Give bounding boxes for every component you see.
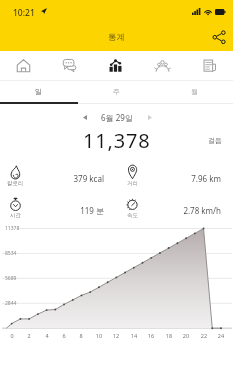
button[interactable]: Home — [0, 51, 46, 80]
button[interactable]: Share — [208, 26, 230, 48]
button[interactable]: Activity — [139, 51, 186, 80]
staticText: 24 — [215, 332, 227, 339]
staticText: 6 — [58, 332, 70, 339]
staticText: 16 — [145, 332, 157, 339]
button[interactable]: 주 — [77, 81, 155, 102]
staticText: 시간 — [10, 212, 21, 219]
staticText: 0 — [6, 332, 18, 339]
button[interactable]: 칼로리 — [0, 163, 117, 195]
staticText: 18 — [163, 332, 175, 339]
staticText: 7.96 km — [141, 173, 221, 184]
staticText: 2.78 km/h — [141, 205, 221, 216]
staticText: 일 — [35, 87, 42, 96]
button[interactable]: 월 — [155, 81, 233, 102]
button[interactable]: 일 — [0, 81, 77, 102]
staticText: 2 — [23, 332, 35, 339]
staticText: 11,378 — [83, 127, 151, 153]
button[interactable]: 거리 — [117, 163, 233, 195]
staticText: 10:21 — [13, 7, 35, 19]
staticText: 8534 — [5, 250, 17, 257]
staticText: 5689 — [5, 275, 17, 282]
button[interactable]: 시간 — [0, 195, 117, 227]
button[interactable]: Statistics — [92, 51, 139, 80]
staticText: 119 분 — [24, 205, 104, 216]
staticText: 12 — [110, 332, 122, 339]
staticText: 14 — [128, 332, 140, 339]
staticText: 10 — [93, 332, 105, 339]
staticText: 걸음 — [208, 136, 222, 145]
staticText: 월 — [191, 87, 198, 96]
button[interactable]: Next day — [142, 110, 157, 125]
button[interactable]: 속도 — [117, 195, 233, 227]
staticText: 주 — [113, 87, 120, 96]
staticText: 2844 — [5, 300, 17, 307]
staticText: 11378 — [5, 225, 20, 232]
staticText: 거리 — [127, 180, 138, 187]
staticText: 칼로리 — [7, 180, 24, 187]
staticText: 4 — [41, 332, 53, 339]
staticText: 20 — [180, 332, 192, 339]
button[interactable]: Chat — [46, 51, 92, 80]
button[interactable]: Previous day — [77, 110, 92, 125]
staticText: 통계 — [108, 32, 125, 43]
button[interactable]: News — [186, 51, 233, 80]
staticText: 379 kcal — [24, 173, 104, 184]
staticText: 속도 — [127, 212, 138, 219]
staticText: 22 — [198, 332, 210, 339]
staticText: 6월 29일 — [101, 112, 133, 123]
staticText: 8 — [75, 332, 87, 339]
